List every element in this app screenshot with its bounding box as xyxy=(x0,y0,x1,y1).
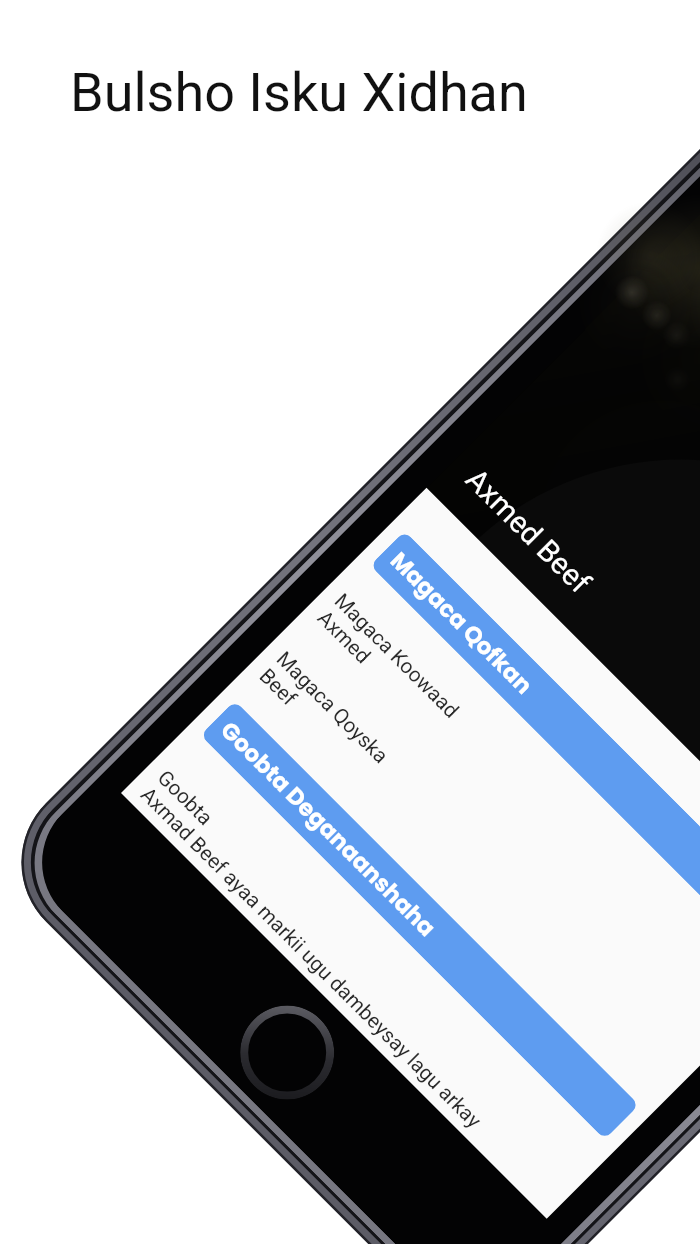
staticText: Beef xyxy=(255,664,302,711)
button[interactable]: Magaca Qofkan xyxy=(370,531,700,970)
staticText: Magaca Qofkan xyxy=(383,545,540,701)
staticText: Axmed Beef xyxy=(459,461,598,600)
staticText: Magaca Koowaad xyxy=(330,589,464,723)
staticText: Magaca Qoyska xyxy=(272,647,393,768)
staticText: Goobta xyxy=(153,765,218,831)
button[interactable]: Home xyxy=(221,986,354,1119)
staticText: Axmed xyxy=(313,606,375,669)
button[interactable]: Goobta Deganaanshaha xyxy=(200,700,639,1140)
staticText: Axmad Beef ayaa markii ugu dambeysay lag… xyxy=(136,782,487,1133)
staticText: Bulsho Isku Xidhan xyxy=(70,61,528,124)
staticText: Goobta Deganaanshaha xyxy=(214,715,443,944)
